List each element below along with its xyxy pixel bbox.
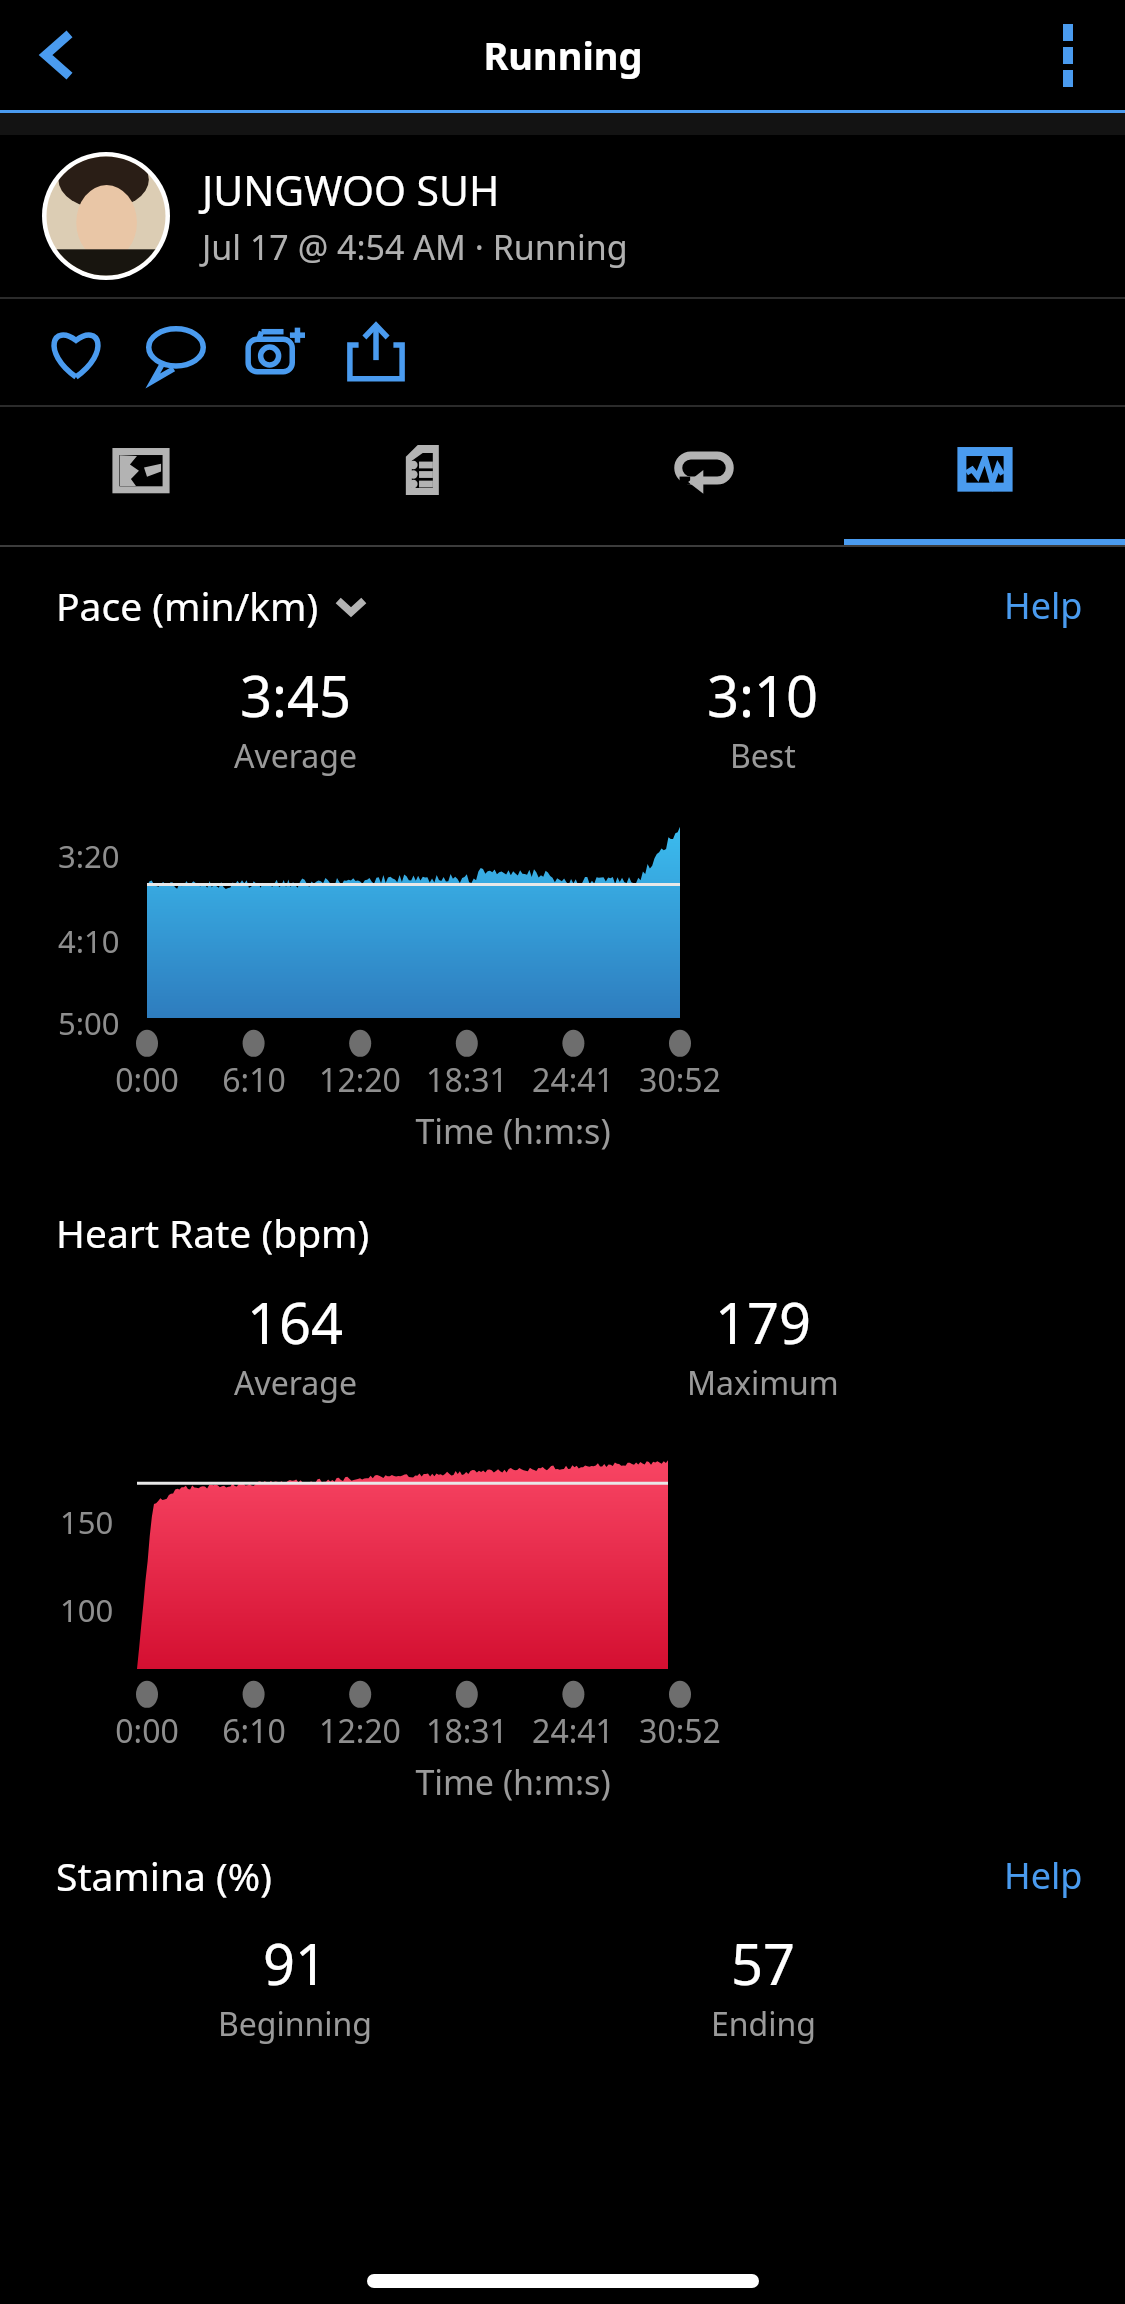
staticText: 100 xyxy=(60,1589,114,1631)
staticText: 0:00 xyxy=(115,1058,179,1102)
staticText: Help xyxy=(1004,1851,1083,1900)
staticText: 4:10 xyxy=(58,920,120,962)
staticText: 57 xyxy=(731,1925,796,2001)
staticText: 3:10 xyxy=(707,657,819,733)
button[interactable]: Share xyxy=(326,299,426,405)
staticText: Ending xyxy=(711,2002,816,2046)
staticText: Best xyxy=(730,734,796,778)
staticText: 24:41 xyxy=(532,1058,614,1102)
staticText: Running xyxy=(483,29,643,81)
button[interactable]: Laps xyxy=(563,407,844,545)
staticText: Time (h:m:s) xyxy=(415,1759,611,1805)
staticText: 150 xyxy=(60,1501,114,1543)
staticText: 6:10 xyxy=(222,1058,286,1102)
staticText: Average xyxy=(234,734,358,778)
staticText: 18:31 xyxy=(426,1709,508,1753)
staticText: 0:00 xyxy=(115,1709,179,1753)
staticText: Time (h:m:s) xyxy=(415,1108,611,1154)
staticText: Jul 17 @ 4:54 AM · Running xyxy=(202,224,628,270)
button[interactable]: Like xyxy=(26,299,126,405)
staticText: 24:41 xyxy=(532,1709,614,1753)
button[interactable]: Help xyxy=(1004,581,1083,630)
button[interactable]: Pace (min/km) xyxy=(56,579,367,632)
staticText: 12:20 xyxy=(319,1058,401,1102)
button[interactable]: More options xyxy=(1033,20,1103,90)
button[interactable]: Add photo xyxy=(226,299,326,405)
staticText: 5:00 xyxy=(58,1002,120,1044)
staticText: Help xyxy=(1004,581,1083,630)
staticText: 179 xyxy=(715,1284,812,1360)
staticText: 3:20 xyxy=(58,835,120,877)
staticText: Heart Rate (bpm) xyxy=(56,1206,370,1259)
staticText: Pace (min/km) xyxy=(56,579,319,632)
button[interactable]: Map xyxy=(0,407,282,545)
staticText: 3:45 xyxy=(240,657,352,733)
staticText: 30:52 xyxy=(639,1709,721,1753)
button[interactable]: Back xyxy=(20,17,96,93)
staticText: 30:52 xyxy=(639,1058,721,1102)
button[interactable]: Notes xyxy=(282,407,563,545)
staticText: Beginning xyxy=(218,2002,373,2046)
button[interactable]: Graphs xyxy=(844,407,1125,545)
staticText: Maximum xyxy=(687,1361,839,1405)
button[interactable]: Help xyxy=(1004,1851,1083,1900)
staticText: 6:10 xyxy=(222,1709,286,1753)
staticText: Average xyxy=(234,1361,358,1405)
staticText: 18:31 xyxy=(426,1058,508,1102)
button[interactable]: JUNGWOO SUH xyxy=(0,135,1125,297)
staticText: 12:20 xyxy=(319,1709,401,1753)
staticText: Stamina (%) xyxy=(56,1849,272,1902)
staticText: JUNGWOO SUH xyxy=(202,162,500,218)
staticText: 91 xyxy=(263,1925,328,2001)
staticText: 164 xyxy=(247,1284,344,1360)
button[interactable]: Comment xyxy=(126,299,226,405)
